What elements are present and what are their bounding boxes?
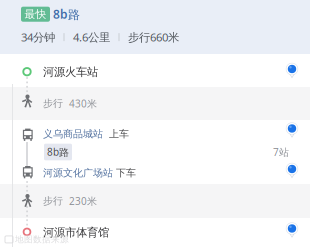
staticText: 230米 <box>69 194 97 208</box>
staticText: 34分钟 <box>21 29 55 45</box>
staticText: 上车 <box>103 128 129 140</box>
staticText: 步行660米 <box>128 29 179 45</box>
staticText: 步行 <box>43 195 63 207</box>
button[interactable]: 河源文化广场站 <box>0 162 310 184</box>
button[interactable]: 河源市体育馆 <box>0 218 310 247</box>
button[interactable]: 义乌商品城站 <box>0 120 310 142</box>
staticText: 步行 <box>43 97 63 110</box>
staticText: 河源文化广场站 <box>43 167 113 179</box>
staticText: 河源市体育馆 <box>43 225 109 240</box>
staticText: 8b路 <box>53 6 80 22</box>
staticText: 8b路 <box>47 145 69 159</box>
staticText: 430米 <box>69 97 97 110</box>
staticText: 7站 <box>273 145 289 159</box>
staticText: 最快 <box>24 7 46 21</box>
staticText: 河源火车站 <box>43 65 98 79</box>
staticText: 地图数据来源 <box>15 234 69 245</box>
staticText: 义乌商品城站 <box>43 128 103 140</box>
staticText: 下车 <box>113 167 136 179</box>
button[interactable]: 河源火车站 <box>0 54 310 87</box>
staticText: 4.6公里 <box>73 29 110 45</box>
